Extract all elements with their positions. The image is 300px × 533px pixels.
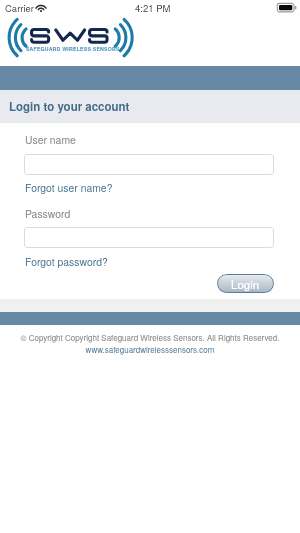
staticText: © Copyright Copyright Safeguard Wireless… [0, 332, 300, 343]
staticText: Carrier [5, 1, 35, 15]
staticText: SAFEGUARD WIRELESS SENSORS [26, 45, 120, 52]
staticText: Login to your account [9, 98, 130, 114]
staticText: 4:21 PM [135, 1, 171, 15]
staticText: Password [25, 206, 71, 221]
button[interactable]: Forgot password? [25, 254, 108, 269]
button[interactable]: text field [24, 154, 274, 175]
staticText: Login [231, 276, 260, 292]
button[interactable]: Login [217, 274, 274, 293]
button[interactable]: text field [24, 227, 274, 248]
staticText: User name [25, 132, 76, 147]
button[interactable]: Forgot user name? [25, 180, 113, 195]
button[interactable]: www.safeguardwirelesssensors.com [0, 344, 300, 355]
